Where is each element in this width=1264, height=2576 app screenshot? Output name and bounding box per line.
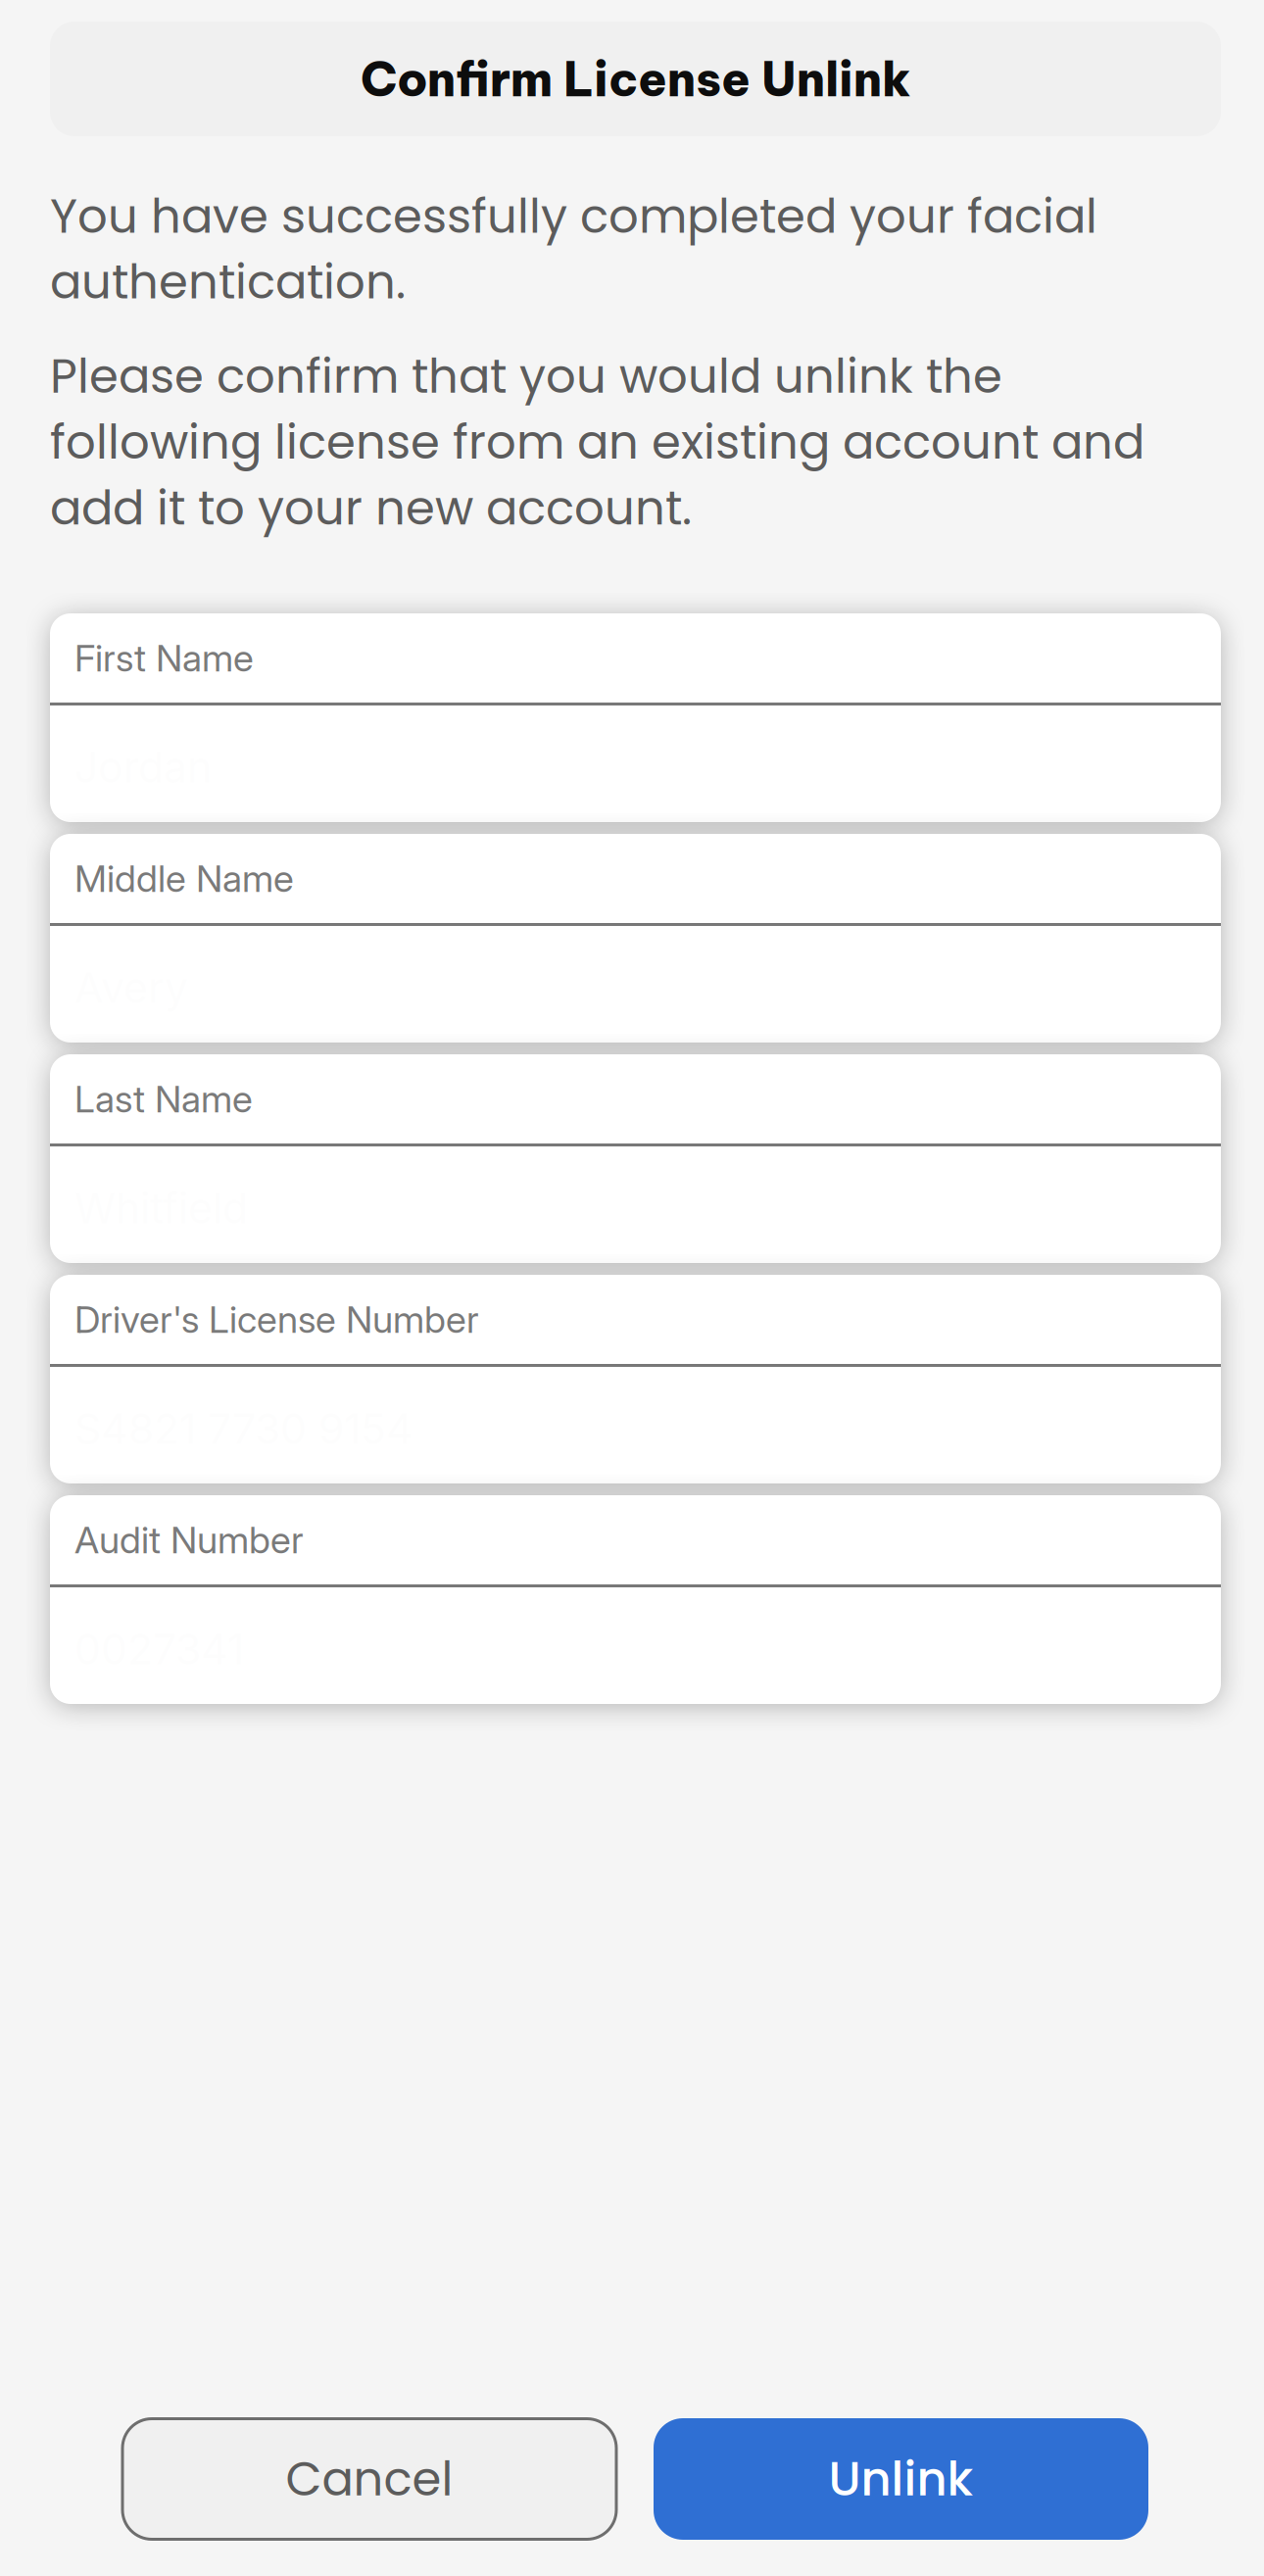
button[interactable]: First Name <box>50 613 1221 822</box>
staticText: Confirm License Unlink <box>361 49 910 109</box>
button[interactable]: Cancel <box>122 2419 616 2539</box>
staticText: Cancel <box>286 2446 453 2512</box>
staticText: Middle Name <box>74 856 294 901</box>
button[interactable]: Driver's License Number <box>50 1275 1221 1483</box>
staticText: Last Name <box>74 1076 253 1121</box>
button[interactable]: Last Name <box>50 1054 1221 1263</box>
button[interactable]: Middle Name <box>50 834 1221 1043</box>
button[interactable]: Audit Number <box>50 1495 1221 1704</box>
staticText: Audit Number <box>74 1517 304 1562</box>
staticText: Driver's License Number <box>74 1297 479 1342</box>
button[interactable]: Unlink <box>654 2418 1148 2540</box>
staticText: First Name <box>74 635 254 680</box>
staticText: You have successfully completed your fac… <box>50 183 1097 315</box>
staticText: Please confirm that you would unlink the… <box>50 343 1144 541</box>
staticText: Unlink <box>828 2446 973 2512</box>
